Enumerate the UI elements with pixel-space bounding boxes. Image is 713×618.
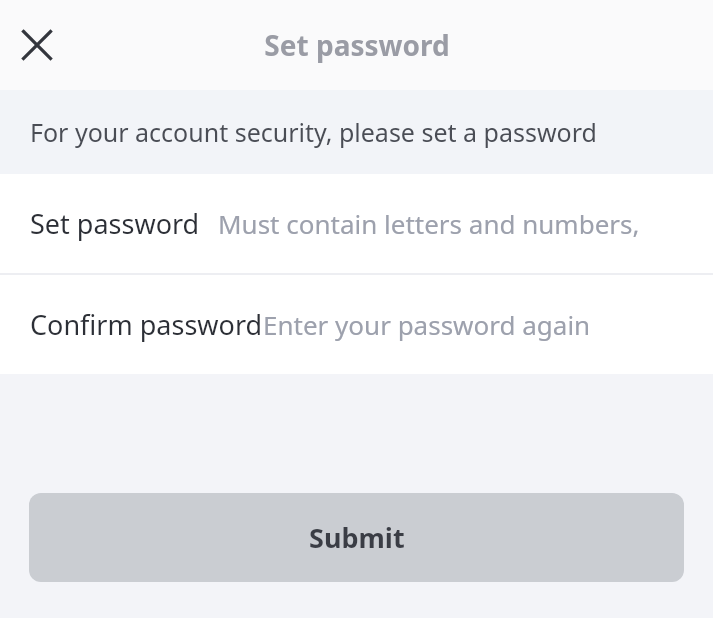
staticText: Confirm password [30, 306, 263, 343]
button[interactable]: Submit [29, 493, 684, 582]
button[interactable]: Close [8, 16, 66, 74]
staticText: Must contain letters and numbers, length… [218, 206, 713, 241]
button[interactable]: Confirm password [0, 275, 713, 374]
staticText: Set password [264, 26, 450, 64]
staticText: For your account security, please set a … [30, 115, 597, 149]
staticText: Set password [30, 205, 200, 242]
button[interactable]: Set password [0, 174, 713, 273]
staticText: Submit [309, 519, 405, 556]
staticText: Enter your password again [263, 307, 591, 342]
